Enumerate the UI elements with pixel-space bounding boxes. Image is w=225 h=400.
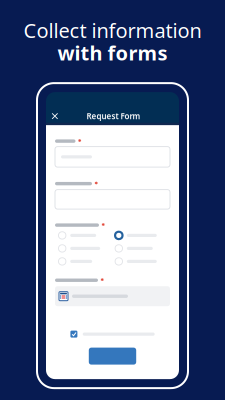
button[interactable] — [89, 348, 136, 365]
staticText: Collect information — [23, 17, 201, 44]
staticText: with forms — [57, 40, 167, 66]
staticText: Request Form — [86, 111, 140, 121]
button[interactable] — [70, 330, 170, 338]
button[interactable]: Close — [49, 110, 60, 122]
